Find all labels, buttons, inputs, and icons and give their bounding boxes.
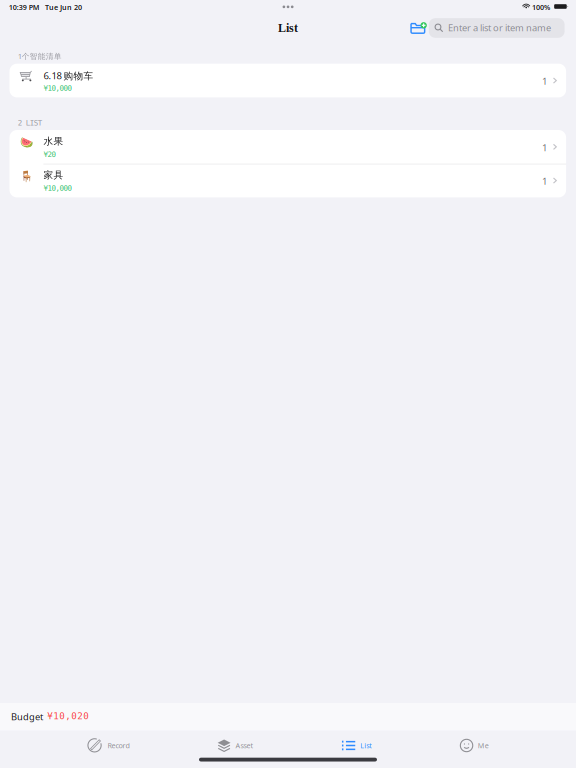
- button[interactable]: New list: [406, 17, 430, 38]
- staticText: ¥10,020: [47, 711, 89, 721]
- button[interactable]: 🪑: [9, 164, 566, 197]
- staticText: 🪑: [20, 170, 33, 182]
- button[interactable]: 6.18 购物车: [9, 64, 566, 97]
- button[interactable]: 🍉: [9, 130, 566, 164]
- staticText: ¥10,000: [43, 184, 71, 192]
- staticText: 家具: [43, 169, 63, 181]
- staticText: 1个智能清单: [18, 51, 62, 61]
- staticText: List: [360, 741, 372, 750]
- button[interactable]: Asset: [207, 731, 264, 760]
- staticText: ¥20: [43, 150, 55, 159]
- button[interactable]: Record: [77, 731, 139, 760]
- staticText: ¥10,000: [43, 84, 71, 92]
- button[interactable]: Me: [450, 731, 499, 760]
- staticText: Me: [478, 741, 489, 750]
- staticText: 1: [542, 141, 547, 154]
- staticText: Record: [107, 741, 129, 750]
- staticText: Asset: [236, 741, 254, 750]
- staticText: Budget: [11, 710, 43, 723]
- staticText: Tue Jun 20: [45, 2, 82, 12]
- staticText: 水果: [43, 135, 63, 147]
- staticText: Enter a list or item name: [448, 21, 551, 34]
- staticText: 2 LIST: [18, 118, 42, 127]
- button[interactable]: Enter a list or item name: [429, 18, 565, 38]
- staticText: 100%: [532, 2, 550, 12]
- staticText: 1: [542, 75, 547, 88]
- button[interactable]: List: [331, 731, 382, 760]
- staticText: 1: [542, 175, 547, 188]
- staticText: List: [278, 21, 298, 35]
- staticText: 🍉: [20, 136, 33, 148]
- staticText: 10:39 PM: [9, 2, 40, 12]
- staticText: 6.18 购物车: [43, 69, 93, 82]
